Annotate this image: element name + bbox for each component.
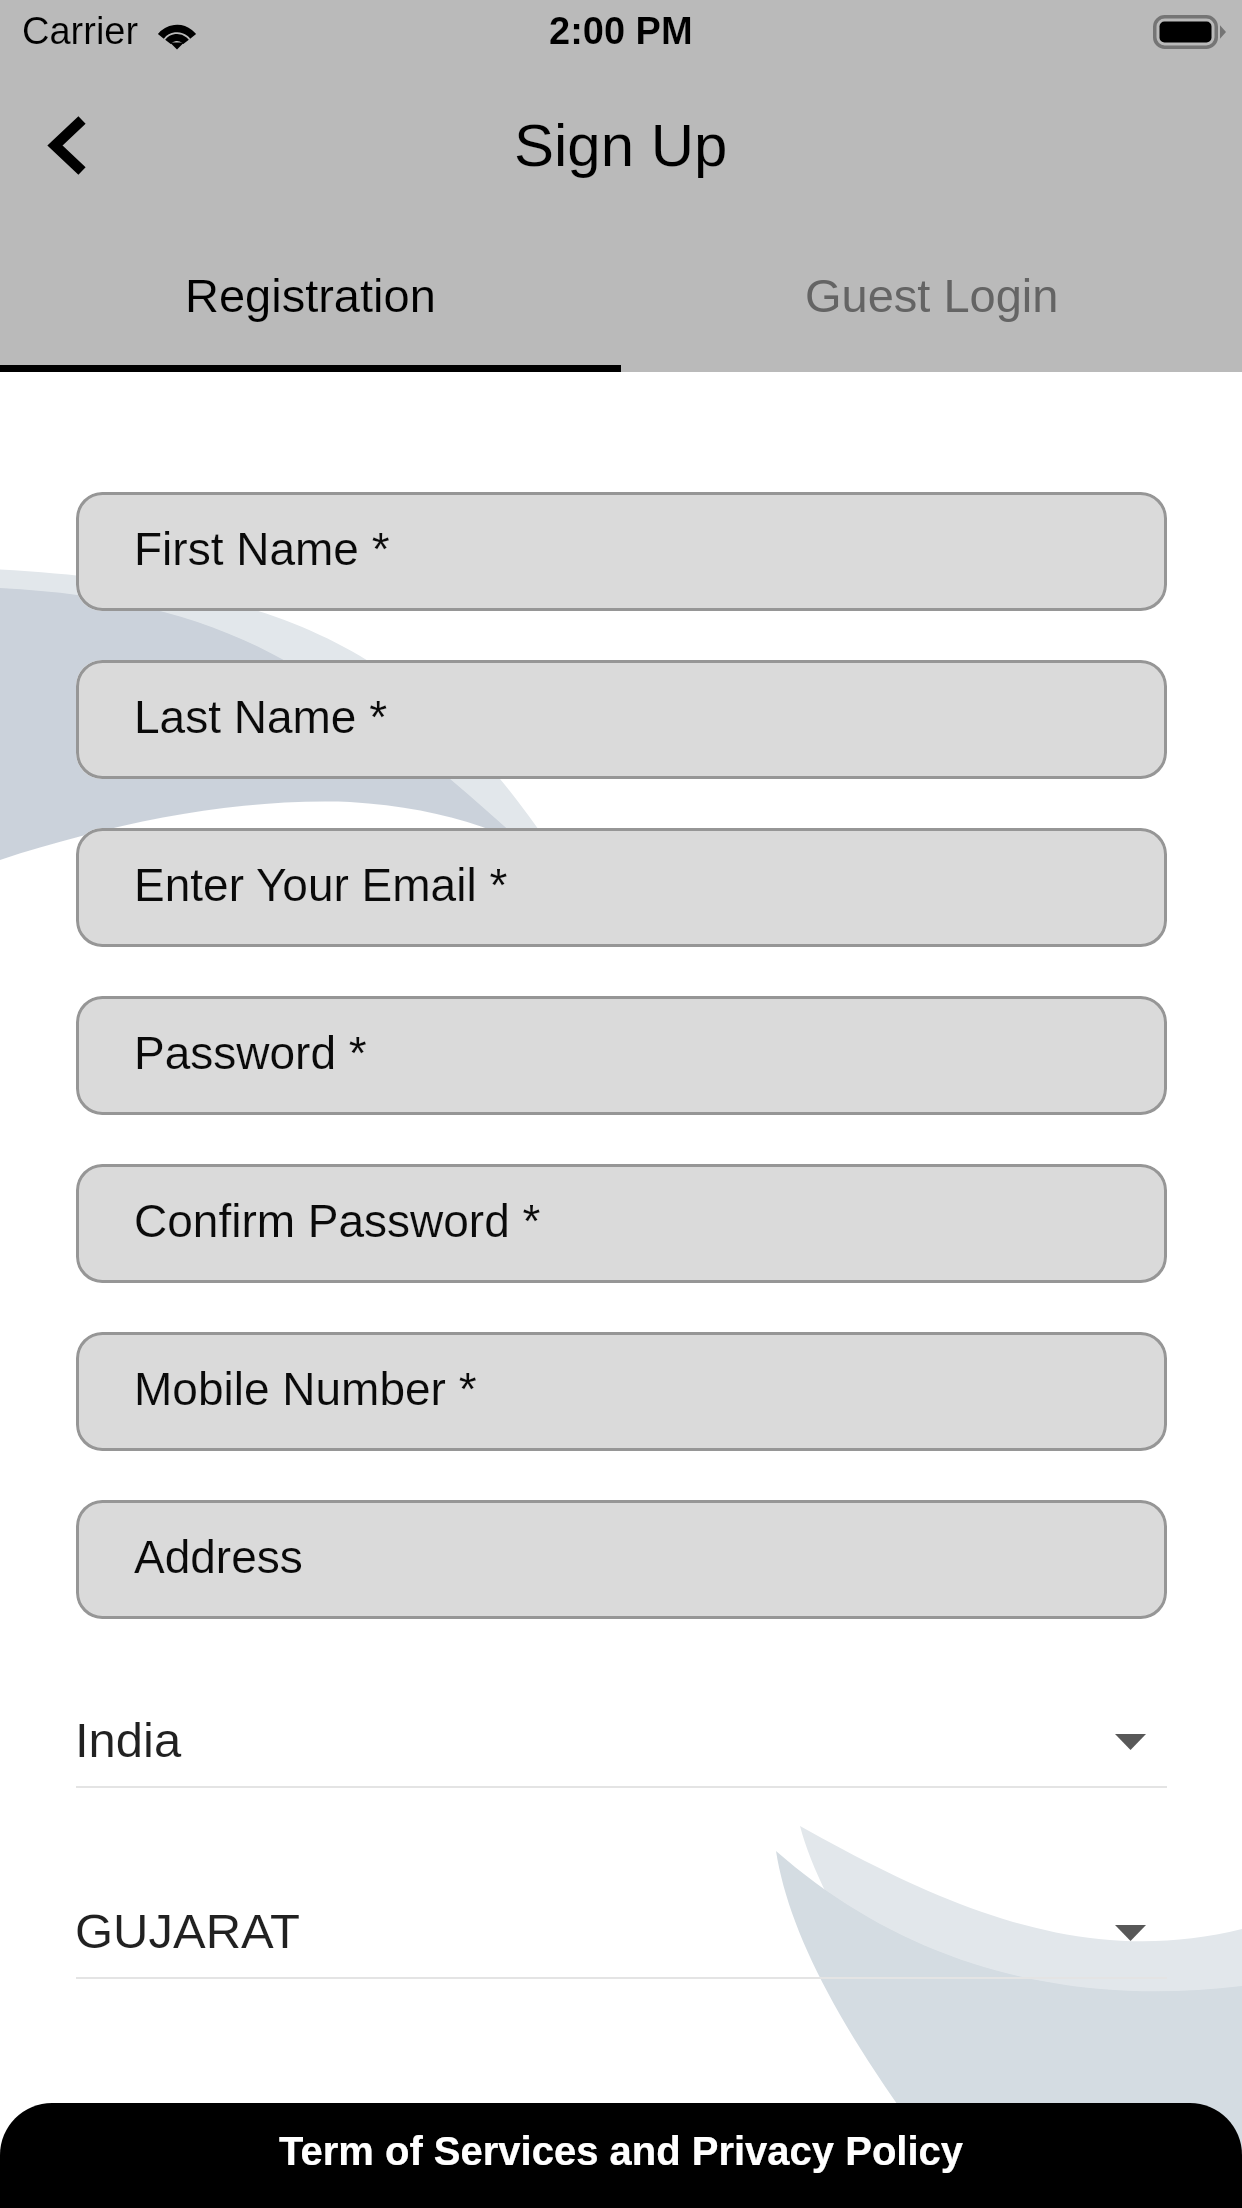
staticText: 2:00 PM bbox=[549, 10, 693, 52]
staticText: Password * bbox=[134, 1027, 367, 1078]
staticText: Sign Up bbox=[514, 112, 728, 179]
staticText: Carrier bbox=[22, 10, 139, 52]
staticText: Guest Login bbox=[805, 269, 1059, 322]
button[interactable]: GUJARAT bbox=[76, 1897, 1167, 1979]
staticText: Last Name * bbox=[134, 691, 388, 742]
button[interactable]: Term of Services and Privacy Policy bbox=[0, 2103, 1242, 2208]
button[interactable]: Guest Login bbox=[621, 232, 1242, 372]
button[interactable]: Confirm Password * bbox=[76, 1164, 1167, 1283]
button[interactable]: Address bbox=[76, 1500, 1167, 1619]
button[interactable]: Registration bbox=[0, 232, 621, 372]
staticText: Term of Services and Privacy Policy bbox=[279, 2129, 964, 2174]
button[interactable]: Mobile Number * bbox=[76, 1332, 1167, 1451]
button[interactable]: Back bbox=[12, 89, 124, 201]
staticText: Registration bbox=[185, 269, 436, 322]
staticText: Enter Your Email * bbox=[134, 859, 508, 910]
button[interactable]: Password * bbox=[76, 996, 1167, 1115]
staticText: GUJARAT bbox=[75, 1904, 301, 1959]
staticText: India bbox=[75, 1713, 182, 1768]
button[interactable]: Enter Your Email * bbox=[76, 828, 1167, 947]
staticText: Confirm Password * bbox=[134, 1195, 541, 1246]
staticText: Mobile Number * bbox=[134, 1363, 477, 1414]
button[interactable]: Last Name * bbox=[76, 660, 1167, 779]
button[interactable]: India bbox=[76, 1706, 1167, 1788]
staticText: Address bbox=[134, 1531, 303, 1582]
staticText: First Name * bbox=[134, 523, 390, 574]
button[interactable]: First Name * bbox=[76, 492, 1167, 611]
